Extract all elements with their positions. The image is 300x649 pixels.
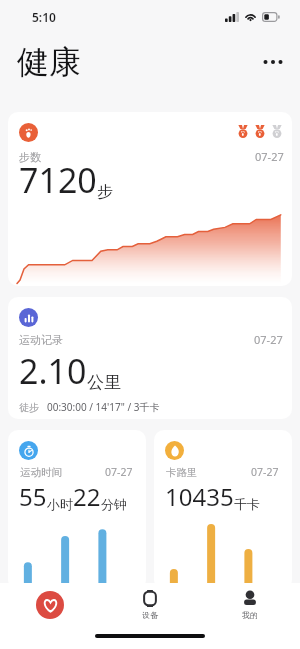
button[interactable]: Health — [0, 583, 100, 627]
staticText: 步数 — [19, 150, 41, 164]
staticText: 千卡 — [234, 496, 260, 512]
other: Health — [36, 591, 64, 619]
staticText: 10435 — [165, 480, 234, 513]
button[interactable]: More options — [254, 43, 292, 81]
button[interactable]: 步数 — [8, 112, 292, 286]
staticText: 07-27 — [254, 332, 283, 347]
staticText: 7120 — [19, 157, 97, 203]
staticText: 步 — [97, 182, 113, 202]
staticText: 22 — [73, 480, 101, 513]
staticText: 2.10 — [19, 348, 87, 394]
button[interactable]: 我的 — [200, 583, 300, 627]
button[interactable]: 运动时间 — [8, 430, 146, 590]
button[interactable]: 运动记录 — [8, 297, 292, 419]
staticText: 运动时间 — [20, 466, 62, 479]
staticText: 07-27 — [251, 465, 279, 479]
staticText: 卡路里 — [166, 466, 198, 479]
staticText: 5:10 — [32, 9, 56, 25]
button[interactable]: 设备 — [100, 583, 200, 627]
staticText: 我的 — [242, 610, 258, 620]
staticText: 07-27 — [105, 465, 133, 479]
staticText: 徒步 — [19, 401, 39, 414]
staticText: 分钟 — [101, 496, 127, 512]
staticText: 运动记录 — [19, 333, 63, 347]
staticText: 设备 — [142, 610, 158, 620]
staticText: 55 — [19, 480, 47, 513]
staticText: 健康 — [17, 42, 81, 82]
staticText: 小时 — [47, 496, 73, 512]
button[interactable]: 卡路里 — [154, 430, 292, 590]
staticText: 公里 — [87, 372, 121, 393]
staticText: 07-27 — [255, 149, 284, 164]
staticText: 00:30:00 / 14'17" / 3千卡 — [47, 400, 160, 414]
